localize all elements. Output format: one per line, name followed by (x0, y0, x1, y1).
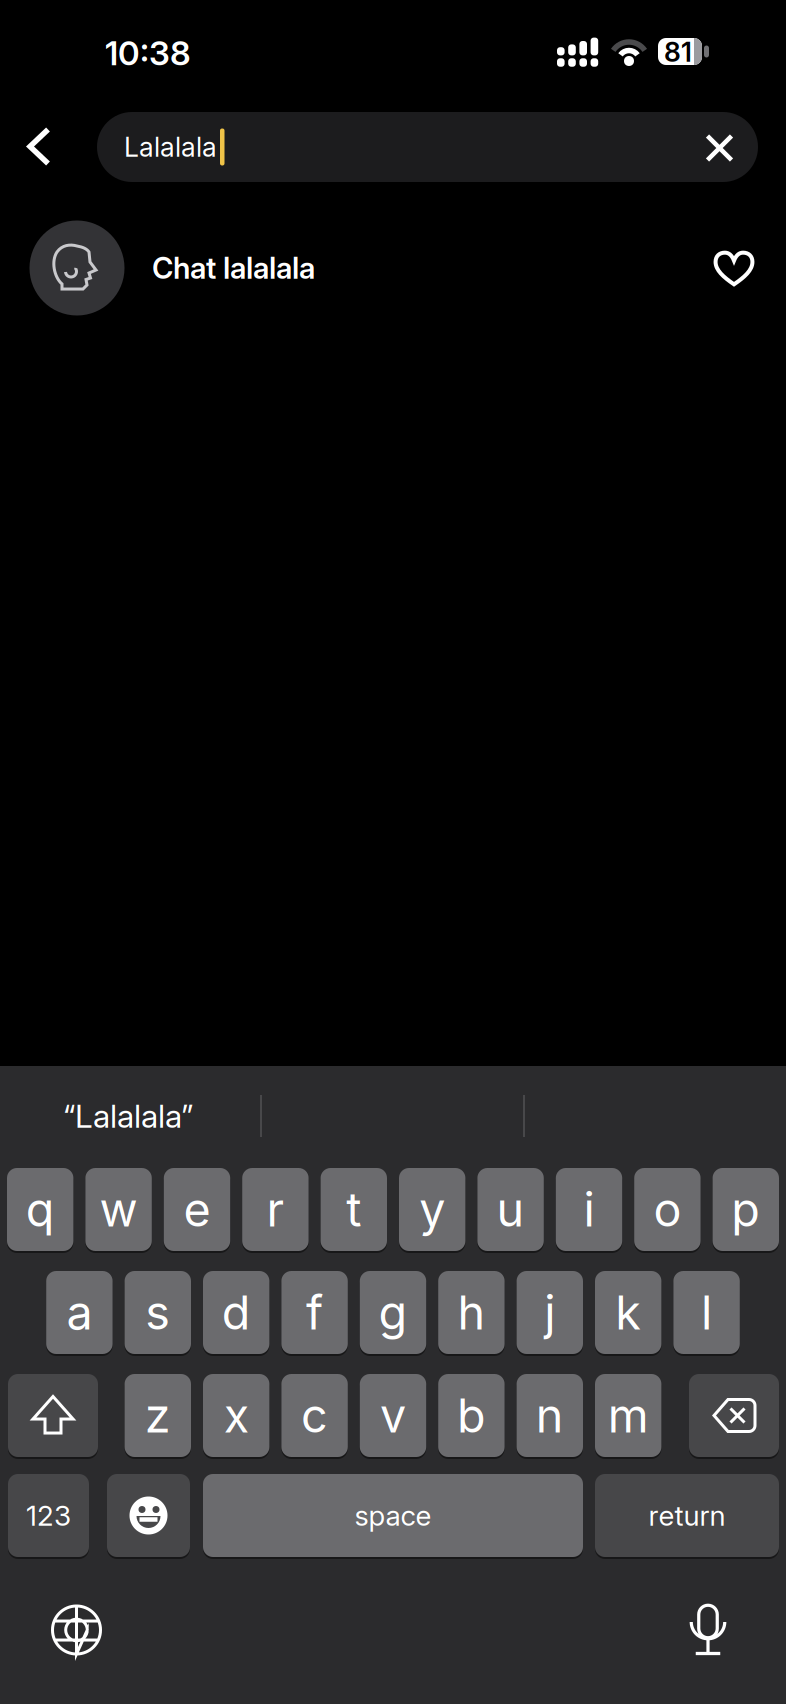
staticText: v (380, 1388, 406, 1443)
button[interactable]: Clear text (706, 135, 732, 161)
staticText: h (457, 1285, 485, 1340)
button[interactable]: space (203, 1474, 583, 1557)
button[interactable]: Add to favorites (715, 252, 753, 285)
staticText: b (457, 1388, 486, 1443)
staticText: e (183, 1182, 210, 1237)
staticText: j (544, 1285, 555, 1340)
staticText: n (536, 1388, 564, 1443)
button[interactable]: q (7, 1168, 73, 1251)
button[interactable]: return (595, 1474, 779, 1557)
staticText: Chat lalalala (152, 251, 315, 285)
button[interactable]: Emoji (107, 1474, 190, 1557)
staticText: k (615, 1285, 641, 1340)
staticText: 123 (26, 1499, 71, 1532)
staticText: d (222, 1285, 251, 1340)
button[interactable]: l (673, 1271, 740, 1354)
staticText: 10:38 (105, 33, 191, 73)
button[interactable]: e (164, 1168, 230, 1251)
button[interactable]: h (438, 1271, 505, 1354)
staticText: y (419, 1182, 445, 1237)
staticText: c (301, 1388, 328, 1443)
button[interactable]: t (321, 1168, 387, 1251)
button[interactable]: g (360, 1271, 426, 1354)
button[interactable]: c (281, 1374, 348, 1457)
staticText: g (378, 1285, 407, 1340)
button[interactable]: w (85, 1168, 152, 1251)
staticText: i (583, 1182, 594, 1237)
button[interactable]: u (477, 1168, 544, 1251)
staticText: l (701, 1285, 712, 1340)
button[interactable]: y (399, 1168, 465, 1251)
button[interactable]: x (203, 1374, 269, 1457)
button[interactable]: k (595, 1271, 661, 1354)
staticText: Lalalala (124, 131, 217, 163)
staticText: t (346, 1182, 361, 1237)
button[interactable]: Dictation (691, 1603, 725, 1655)
staticText: return (648, 1499, 725, 1532)
staticText: a (66, 1285, 92, 1340)
staticText: s (145, 1285, 170, 1340)
button[interactable]: m (595, 1374, 661, 1457)
button[interactable]: r (242, 1168, 309, 1251)
button[interactable]: b (438, 1374, 505, 1457)
button[interactable]: v (360, 1374, 426, 1457)
button[interactable]: j (517, 1271, 583, 1354)
button[interactable]: o (634, 1168, 701, 1251)
button[interactable]: p (713, 1168, 779, 1251)
staticText: w (100, 1182, 138, 1237)
staticText: x (224, 1388, 249, 1443)
staticText: o (653, 1182, 681, 1237)
button[interactable]: 123 (8, 1474, 89, 1557)
staticText: p (731, 1182, 760, 1237)
button[interactable]: Delete (689, 1374, 779, 1457)
button[interactable]: f (281, 1271, 348, 1354)
staticText: q (26, 1182, 55, 1237)
button[interactable]: a (46, 1271, 113, 1354)
staticText: u (497, 1182, 525, 1237)
button[interactable]: Search field (97, 112, 758, 182)
staticText: “Lalalala” (63, 1097, 193, 1135)
staticText: f (306, 1285, 323, 1340)
staticText: 81 (664, 36, 692, 68)
button[interactable]: Next keyboard (50, 1604, 102, 1656)
button[interactable]: d (203, 1271, 269, 1354)
button[interactable]: s (125, 1271, 191, 1354)
button[interactable]: Shift (8, 1374, 98, 1457)
button[interactable]: n (517, 1374, 583, 1457)
staticText: z (145, 1388, 171, 1443)
button[interactable]: i (556, 1168, 622, 1251)
button[interactable]: z (125, 1374, 191, 1457)
button[interactable]: Lalalala (63, 1081, 261, 1151)
button[interactable]: Chat lalalala (0, 218, 786, 318)
staticText: r (266, 1182, 284, 1237)
button[interactable]: Back (28, 127, 50, 165)
staticText: m (608, 1388, 649, 1443)
staticText: space (354, 1499, 431, 1532)
